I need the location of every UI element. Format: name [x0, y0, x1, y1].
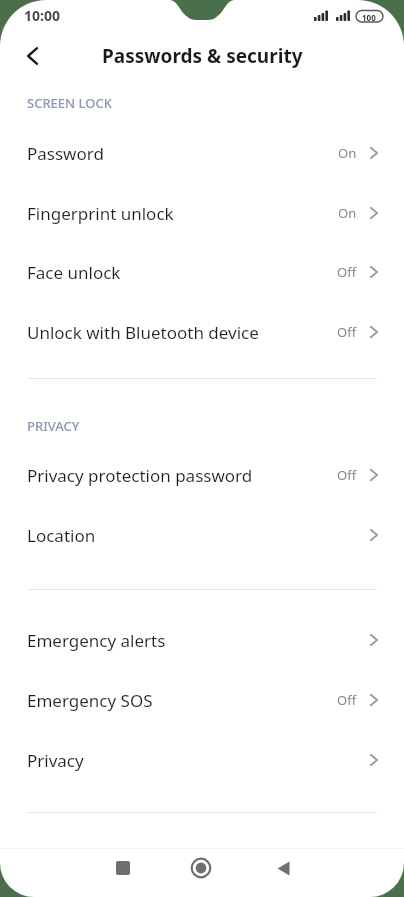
button[interactable]: Face unlock: [0, 242, 404, 302]
button[interactable]: Location: [0, 505, 404, 565]
staticText: Emergency SOS: [27, 689, 153, 712]
button[interactable]: Emergency SOS: [0, 670, 404, 730]
button[interactable]: [179, 846, 223, 890]
staticText: Privacy: [27, 749, 84, 772]
staticText: Emergency alerts: [27, 629, 166, 652]
staticText: SCREEN LOCK: [27, 94, 112, 112]
button[interactable]: Privacy: [0, 730, 404, 790]
staticText: Off: [337, 691, 357, 709]
staticText: Passwords & security: [102, 43, 303, 69]
staticText: On: [338, 204, 357, 222]
staticText: Face unlock: [27, 261, 121, 284]
staticText: Location: [27, 524, 96, 547]
staticText: Unlock with Bluetooth device: [27, 321, 259, 344]
staticText: Fingerprint unlock: [27, 202, 174, 225]
button[interactable]: Unlock with Bluetooth device: [0, 302, 404, 362]
staticText: Password: [27, 142, 104, 165]
staticText: PRIVACY: [27, 417, 80, 435]
staticText: Off: [337, 263, 357, 281]
button[interactable]: Privacy protection password: [0, 445, 404, 505]
button[interactable]: Password: [0, 123, 404, 183]
staticText: 100: [362, 12, 376, 23]
button[interactable]: Fingerprint unlock: [0, 183, 404, 243]
button[interactable]: [101, 846, 145, 890]
staticText: Privacy protection password: [27, 464, 253, 487]
staticText: On: [338, 144, 357, 162]
staticText: Off: [337, 323, 357, 341]
button[interactable]: [261, 846, 305, 890]
staticText: Off: [337, 466, 357, 484]
button[interactable]: [16, 42, 48, 70]
staticText: 10:00: [24, 6, 60, 25]
button[interactable]: Emergency alerts: [0, 610, 404, 670]
